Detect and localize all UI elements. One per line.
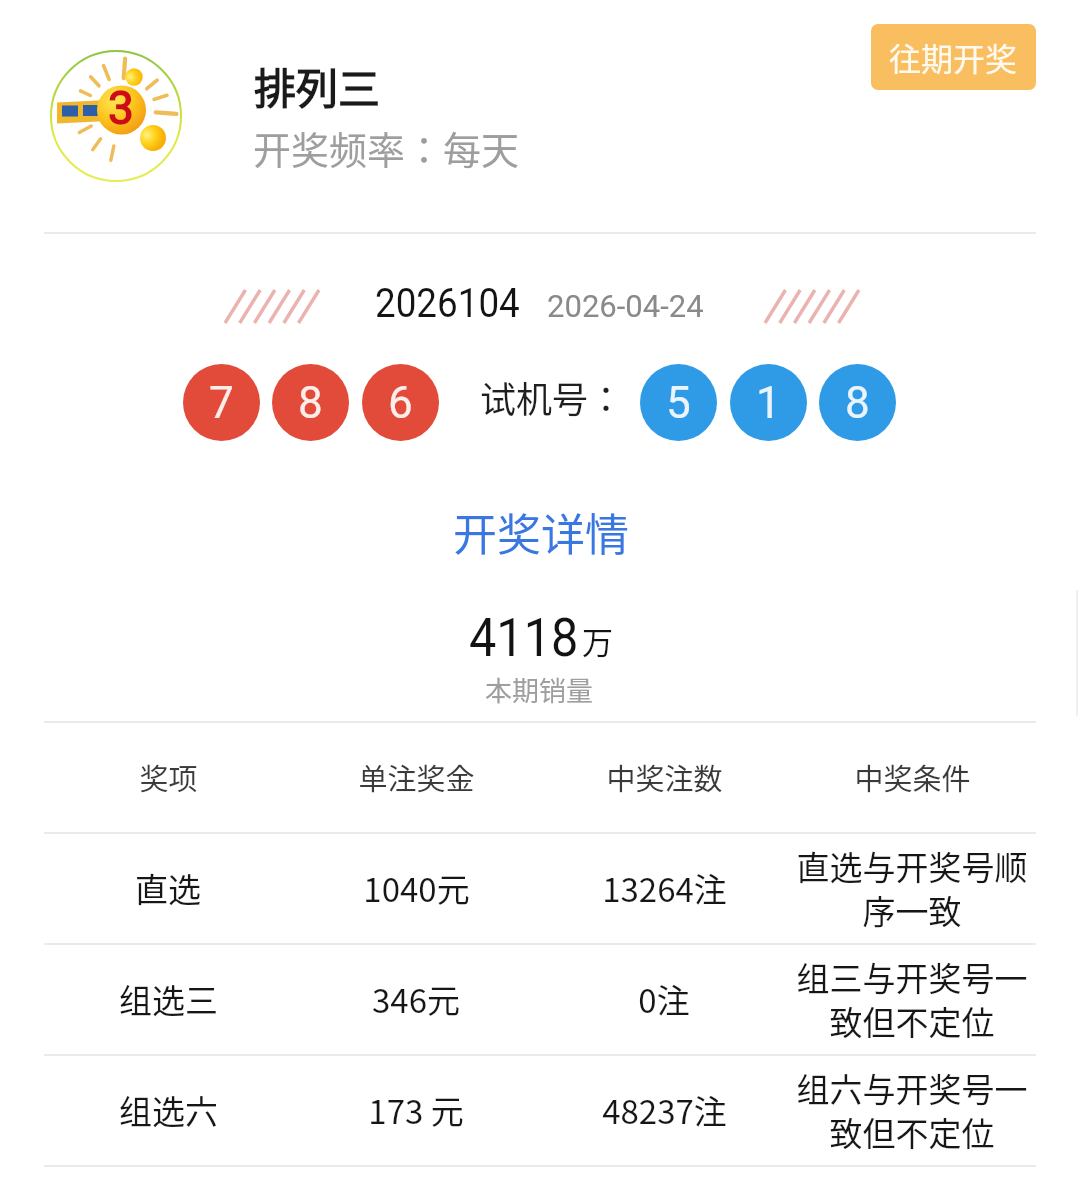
staticText: 直选 [135,864,201,912]
staticText: 5 [666,377,691,429]
staticText: 直选与开奖号顺序一致 [788,842,1036,934]
button[interactable]: 组选六 [44,1054,1036,1165]
staticText: 1 [756,377,781,429]
staticText: 中奖条件 [854,756,971,798]
staticText: 48237注 [602,1086,727,1134]
other: 排列三 彩种图标 [49,49,183,183]
staticText: 0注 [638,975,690,1023]
button[interactable]: 8 [272,364,349,441]
staticText: 本期销量 [485,670,593,709]
staticText: 173 元 [368,1086,464,1134]
staticText: 2026-04-24 [547,287,704,325]
staticText: 7 [209,377,234,429]
button[interactable]: 组选三 [44,943,1036,1054]
staticText: 8 [298,377,323,429]
staticText: 组选六 [119,1086,218,1134]
button[interactable]: 6 [362,364,439,441]
staticText: 单注奖金 [358,756,475,798]
staticText: 组三与开奖号一致但不定位 [788,953,1036,1045]
staticText: 3 [108,81,134,135]
button[interactable]: 7 [183,364,260,441]
button[interactable]: 8 [819,364,896,441]
staticText: 组选三 [119,975,218,1023]
staticText: 4118 [469,606,579,669]
staticText: 组六与开奖号一致但不定位 [788,1064,1036,1156]
button[interactable]: 往期开奖 [871,24,1036,90]
staticText: 万 [582,618,613,663]
button[interactable]: 开奖详情 [430,491,652,573]
staticText: 1040元 [363,864,470,912]
button[interactable]: 1 [730,364,807,441]
staticText: 试机号： [480,371,625,423]
staticText: 6 [388,377,413,429]
staticText: 开奖详情 [453,500,629,564]
staticText: 13264注 [602,864,727,912]
staticText: 往期开奖 [889,34,1018,80]
staticText: 8 [845,377,870,429]
staticText: 2026104 [375,280,520,327]
button[interactable]: 5 [640,364,717,441]
staticText: 346元 [372,975,460,1023]
staticText: 奖项 [139,756,198,798]
button[interactable]: 直选 [44,832,1036,943]
staticText: 排列三 [254,55,381,116]
button[interactable] [0,0,860,232]
staticText: 中奖注数 [606,756,723,798]
staticText: 开奖频率：每天 [253,120,520,175]
